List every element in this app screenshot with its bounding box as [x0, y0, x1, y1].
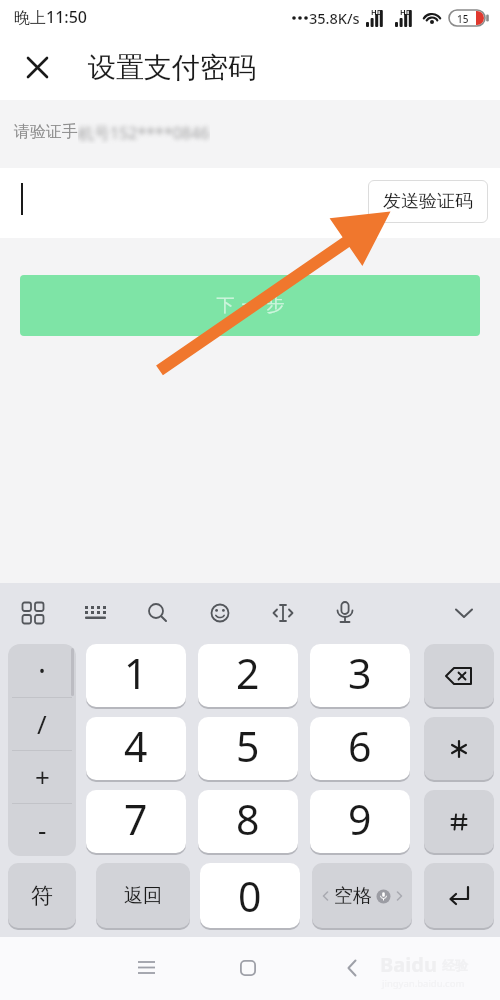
staticText: 机号152****0846 — [78, 122, 210, 144]
staticText: 7 — [124, 791, 148, 847]
staticText: 9 — [348, 791, 372, 847]
staticText: 空格 — [334, 884, 372, 908]
button[interactable]: 符 — [8, 863, 76, 928]
button[interactable] — [424, 644, 494, 707]
button[interactable]: 9 — [310, 790, 410, 853]
staticText: 3 — [348, 645, 372, 701]
button[interactable]: 2 — [198, 644, 298, 707]
button[interactable]: 0 — [200, 863, 300, 928]
staticText: Baidu — [380, 951, 437, 978]
button[interactable] — [78, 595, 114, 631]
button[interactable] — [140, 595, 176, 631]
button[interactable]: 8 — [198, 790, 298, 853]
button[interactable]: + — [8, 750, 76, 803]
button[interactable] — [327, 595, 363, 631]
button[interactable]: 发送验证码 — [368, 180, 488, 223]
button[interactable] — [265, 595, 301, 631]
button[interactable] — [15, 595, 51, 631]
button[interactable]: / — [8, 697, 76, 750]
button[interactable] — [424, 790, 494, 853]
staticText: 1 — [124, 645, 148, 701]
staticText: HD — [371, 7, 383, 17]
button[interactable]: 1 — [86, 644, 186, 707]
staticText: + — [35, 759, 50, 794]
staticText: 35.8K/s — [309, 8, 360, 28]
button[interactable]: 空格 — [312, 863, 412, 928]
staticText: 6 — [348, 718, 372, 774]
staticText: 5 — [236, 718, 260, 774]
button[interactable]: 6 — [310, 717, 410, 780]
button[interactable] — [230, 950, 266, 986]
staticText: 请验证手 — [14, 122, 78, 142]
staticText: 设置支付密码 — [88, 50, 256, 85]
button[interactable]: 3 — [310, 644, 410, 707]
button[interactable]: 5 — [198, 717, 298, 780]
staticText: 8 — [236, 791, 260, 847]
button[interactable]: 下一步 — [20, 275, 480, 336]
button[interactable] — [446, 595, 482, 631]
button[interactable]: 返回 — [96, 863, 190, 928]
staticText: 15 — [457, 12, 469, 26]
staticText: 0 — [238, 868, 262, 924]
staticText: - — [38, 812, 47, 847]
button[interactable] — [129, 950, 165, 986]
staticText: · — [38, 650, 47, 691]
staticText: 经验 — [442, 957, 468, 973]
staticText: 符 — [31, 882, 53, 910]
staticText: / — [37, 706, 47, 741]
button[interactable]: · — [8, 644, 76, 697]
staticText: 下一步 — [213, 294, 288, 317]
staticText: 晚上11:50 — [14, 6, 87, 28]
staticText: 返回 — [124, 884, 162, 908]
staticText: HD — [400, 7, 412, 17]
button[interactable] — [424, 863, 494, 928]
button[interactable]: 4 — [86, 717, 186, 780]
button[interactable]: 7 — [86, 790, 186, 853]
button[interactable] — [424, 717, 494, 780]
button[interactable] — [27, 57, 48, 78]
button[interactable]: - — [8, 803, 76, 856]
staticText: 4 — [124, 718, 148, 774]
staticText: 发送验证码 — [383, 190, 473, 213]
button[interactable] — [334, 950, 370, 986]
staticText: 2 — [236, 645, 260, 701]
button[interactable] — [202, 595, 238, 631]
